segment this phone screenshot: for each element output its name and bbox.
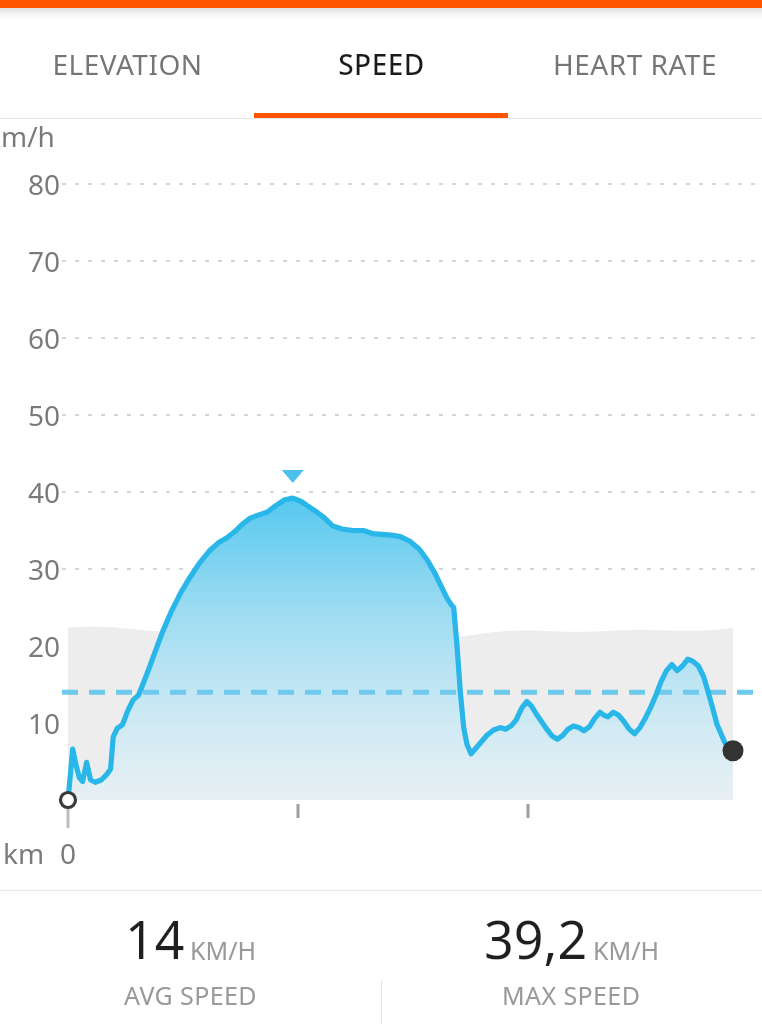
button[interactable]: ELEVATION (0, 20, 254, 119)
staticText: 40 (12, 473, 60, 511)
staticText: MAX SPEED (502, 978, 641, 1012)
staticText: HEART RATE (553, 45, 717, 83)
staticText: KM/H (190, 933, 256, 967)
staticText: 39,2 (484, 903, 588, 974)
button[interactable]: SPEED (254, 20, 508, 119)
staticText: AVG SPEED (124, 978, 257, 1012)
staticText: 14 (125, 903, 185, 974)
staticText: km (3, 834, 45, 872)
staticText: km/h (0, 117, 55, 155)
staticText: 60 (12, 319, 60, 357)
staticText: SPEED (338, 45, 425, 83)
button[interactable]: 14 (0, 891, 381, 1024)
staticText: 20 (12, 627, 60, 665)
staticText: ELEVATION (52, 45, 203, 83)
staticText: 10 (12, 704, 60, 742)
staticText: KM/H (593, 933, 659, 967)
staticText: 0 (60, 834, 77, 872)
staticText: 70 (12, 242, 60, 280)
staticText: 30 (12, 550, 60, 588)
button[interactable]: HEART RATE (508, 20, 762, 119)
button[interactable]: 39,2 (381, 891, 762, 1024)
staticText: 50 (12, 396, 60, 434)
staticText: 80 (12, 165, 60, 203)
